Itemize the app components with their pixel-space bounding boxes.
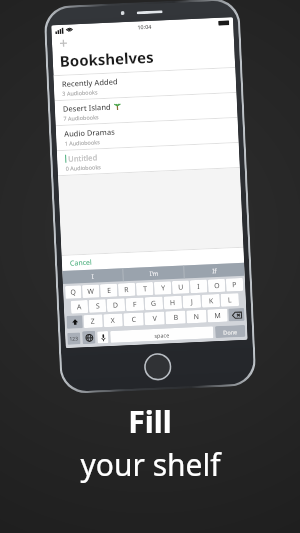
button[interactable]: H	[164, 296, 182, 309]
button[interactable]: J	[183, 295, 201, 309]
button[interactable]: M	[207, 309, 228, 322]
staticText: Y	[161, 283, 165, 294]
button[interactable]: K	[201, 294, 220, 308]
staticText: X	[110, 316, 116, 326]
button[interactable]: N	[186, 310, 207, 323]
staticText: 3 Audiobooks	[62, 88, 98, 97]
button[interactable]: D	[107, 298, 125, 312]
button[interactable]: Q	[65, 285, 82, 299]
button[interactable]: Dictation	[97, 331, 109, 343]
button[interactable]: O	[208, 279, 225, 292]
staticText: Cancel	[70, 258, 92, 269]
staticText: If	[212, 267, 218, 275]
staticText: your shelf	[80, 444, 221, 485]
staticText: H	[170, 298, 176, 308]
staticText: J	[191, 297, 193, 307]
button[interactable]: Y	[154, 281, 171, 295]
staticText: C	[131, 315, 137, 325]
staticText: M	[214, 311, 222, 321]
staticText: Untitled	[68, 152, 97, 164]
button[interactable]: Cancel	[62, 248, 244, 271]
staticText: B	[173, 313, 179, 323]
staticText: I	[91, 273, 95, 281]
staticText: K	[209, 296, 214, 306]
staticText: Z	[90, 317, 96, 327]
staticText: G	[151, 299, 157, 309]
staticText: D	[113, 300, 119, 311]
staticText: Fill	[128, 401, 172, 442]
staticText: 123	[69, 335, 79, 343]
button[interactable]: B	[165, 310, 186, 324]
button[interactable]: S	[89, 299, 106, 313]
staticText: S	[96, 301, 100, 312]
staticText: Audio Dramas	[64, 126, 115, 139]
button[interactable]: A	[71, 300, 88, 314]
button[interactable]: X	[103, 313, 123, 327]
button[interactable]: P	[226, 278, 243, 292]
staticText: E	[107, 286, 111, 296]
button[interactable]: W	[82, 284, 100, 298]
staticText: R	[124, 285, 129, 295]
button[interactable]: T	[136, 282, 153, 296]
button[interactable]: L	[220, 293, 239, 307]
button[interactable]: V	[144, 311, 165, 325]
button[interactable]: Audio Dramas	[56, 118, 239, 150]
button[interactable]: I'm	[123, 266, 184, 281]
button[interactable]: C	[123, 312, 144, 326]
button[interactable]: Untitled	[57, 143, 240, 175]
button[interactable]: space	[110, 326, 213, 343]
staticText: Q	[70, 287, 76, 298]
button[interactable]: F	[126, 297, 144, 311]
staticText: Done	[223, 328, 237, 336]
staticText: F	[133, 300, 137, 310]
staticText: U	[178, 282, 184, 293]
staticText: Bookshelves	[59, 47, 154, 71]
staticText: I'm	[149, 270, 159, 278]
staticText: V	[152, 314, 158, 324]
button[interactable]: E	[100, 284, 118, 297]
button[interactable]: G	[145, 296, 163, 310]
button[interactable]: Key	[82, 331, 96, 344]
button[interactable]: 123	[67, 332, 81, 345]
button[interactable]: Z	[83, 314, 103, 328]
staticText: T	[143, 284, 147, 294]
staticText: L	[228, 295, 232, 306]
button[interactable]: Desert Island	[55, 93, 237, 125]
staticText: W	[87, 287, 94, 297]
staticText: 0 Audiobooks	[65, 163, 102, 172]
staticText: 7 Audiobooks	[63, 113, 99, 122]
button[interactable]: I	[190, 279, 207, 293]
staticText: A	[77, 302, 82, 312]
staticText: I	[197, 282, 200, 292]
staticText: Desert Island	[63, 102, 111, 114]
staticText: 1 Audiobooks	[64, 138, 101, 147]
staticText: P	[232, 280, 237, 290]
staticText: N	[193, 312, 200, 322]
button[interactable]: I	[62, 268, 123, 284]
button[interactable]: Key	[228, 308, 245, 321]
button[interactable]: If	[184, 263, 245, 278]
button[interactable]: Add bookshelf	[52, 28, 234, 51]
staticText: space	[154, 331, 169, 339]
button[interactable]: Key	[66, 315, 83, 329]
button[interactable]: Done	[215, 325, 245, 338]
button[interactable]: U	[172, 280, 189, 294]
button[interactable]: Recently Added	[53, 68, 236, 100]
staticText: O	[214, 281, 220, 291]
staticText: Recently Added	[62, 76, 118, 89]
button[interactable]: R	[118, 283, 135, 297]
staticText: 10:04	[137, 23, 152, 30]
